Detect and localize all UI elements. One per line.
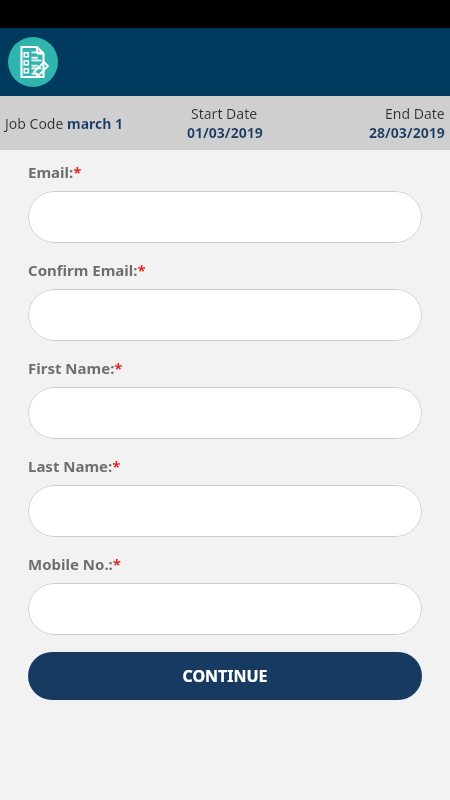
staticText: Last Name:*: [28, 456, 121, 476]
staticText: Start Date: [191, 104, 258, 123]
button[interactable]: [28, 387, 422, 439]
staticText: Confirm Email:*: [28, 260, 146, 280]
button[interactable]: [28, 289, 422, 341]
staticText: Email:*: [28, 162, 82, 182]
button[interactable]: [28, 191, 422, 243]
button[interactable]: [28, 485, 422, 537]
button[interactable]: Job form: [8, 37, 58, 87]
staticText: Job Code march 1: [5, 114, 123, 133]
button[interactable]: CONTINUE: [28, 652, 422, 700]
staticText: CONTINUE: [182, 665, 268, 687]
staticText: 01/03/2019: [187, 123, 263, 142]
staticText: End Date: [385, 104, 445, 123]
staticText: 28/03/2019: [369, 123, 445, 142]
staticText: Mobile No.:*: [28, 554, 121, 574]
staticText: First Name:*: [28, 358, 123, 378]
button[interactable]: [28, 583, 422, 635]
